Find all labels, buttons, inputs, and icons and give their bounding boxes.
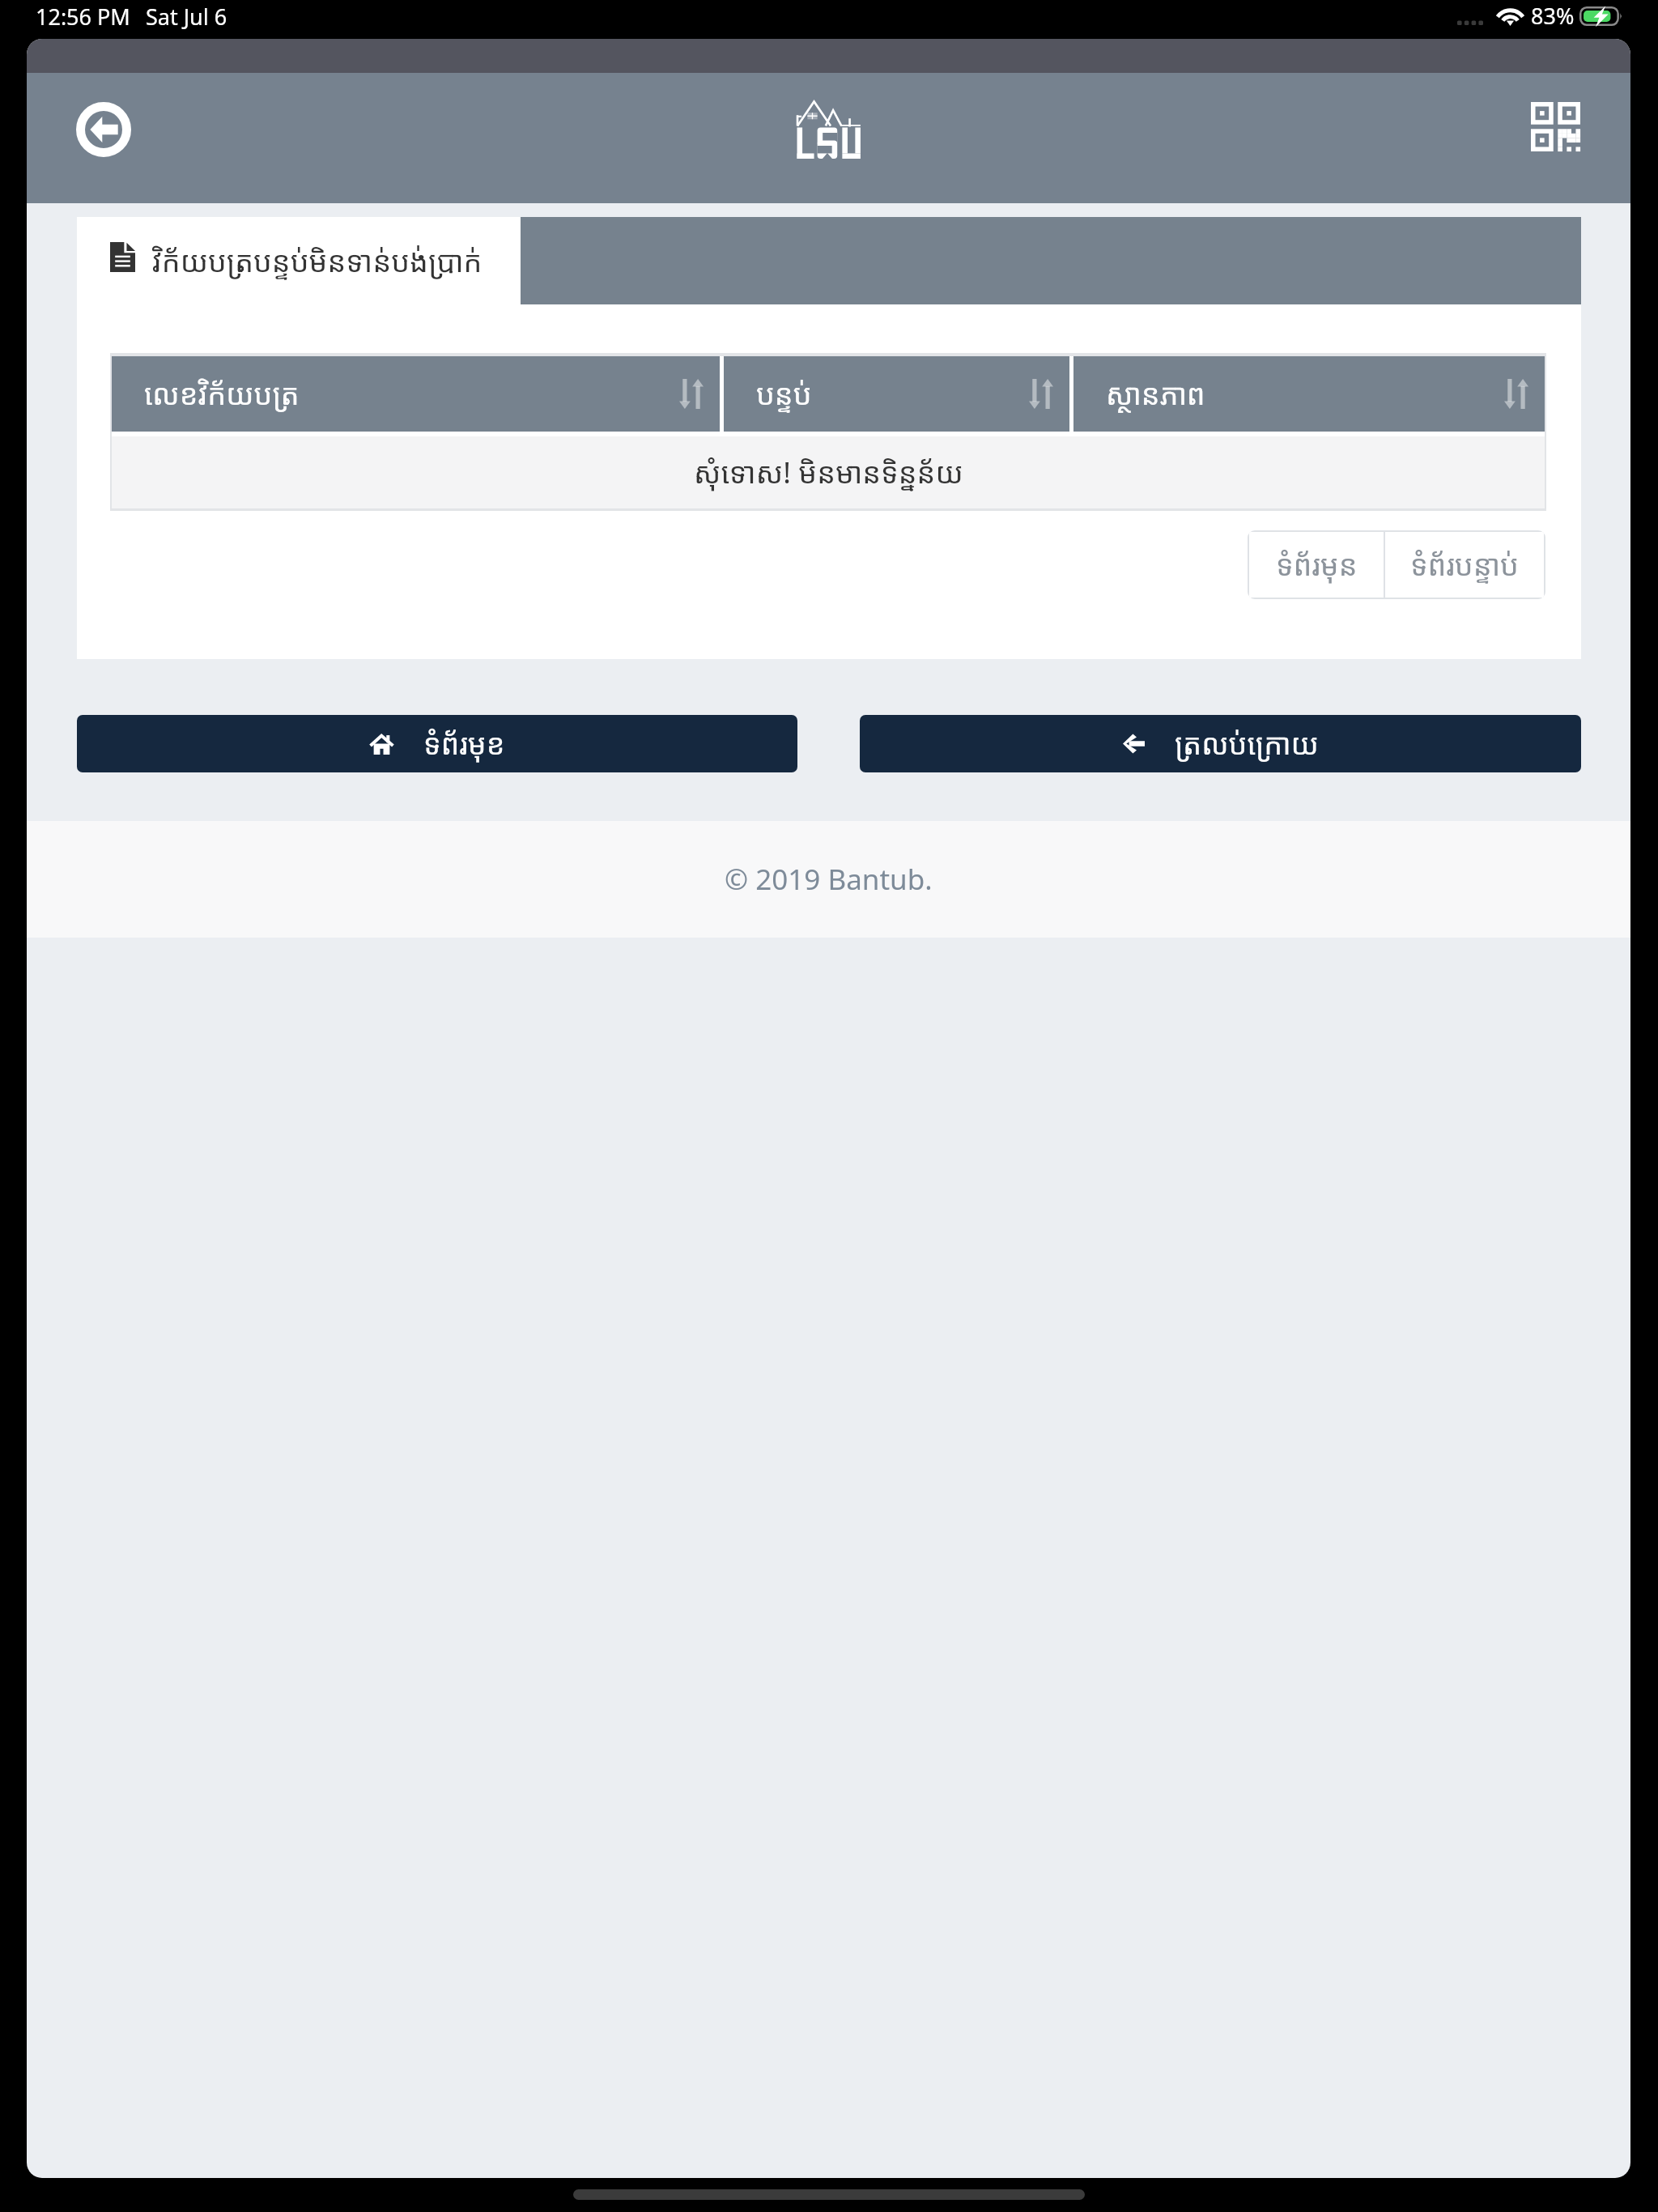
staticText: វិក័យបត្របន្ទប់មិនទាន់បង់ប្រាក់ <box>152 241 483 281</box>
staticText: លេខវិក័យបត្រ <box>144 374 300 414</box>
staticText: ត្រលប់ក្រោយ <box>1175 724 1319 764</box>
button[interactable]: Back <box>70 96 136 162</box>
staticText: Sat Jul 6 <box>146 2 227 32</box>
button[interactable]: Scan QR code <box>1526 97 1585 156</box>
button[interactable]: វិក័យបត្របន្ទប់មិនទាន់បង់ប្រាក់ <box>77 217 521 304</box>
staticText: 12:56 PM <box>36 2 130 32</box>
button[interactable]: លេខវិក័យបត្រ <box>112 356 720 432</box>
button[interactable]: ទំព័របន្ទាប់ <box>1385 532 1544 598</box>
staticText: ស្ថានភាព <box>1106 374 1205 414</box>
button[interactable]: បន្ទប់ <box>724 356 1069 432</box>
button[interactable]: ស្ថានភាព <box>1073 356 1545 432</box>
button[interactable]: ទំព័រមុន <box>1249 532 1384 598</box>
staticText: ទំព័រមុខ <box>423 724 505 764</box>
button[interactable]: ត្រលប់ក្រោយ <box>860 715 1581 772</box>
staticText: បន្ទប់ <box>756 374 812 414</box>
staticText: © 2019 Bantub. <box>725 860 933 899</box>
staticText: ទំព័របន្ទាប់ <box>1410 545 1519 585</box>
button[interactable]: ទំព័រមុខ <box>77 715 797 772</box>
staticText: 83% <box>1531 1 1575 31</box>
staticText: សុំទោស! មិនមានទិន្នន័យ <box>694 453 963 492</box>
staticText: ទំព័រមុន <box>1276 545 1358 585</box>
